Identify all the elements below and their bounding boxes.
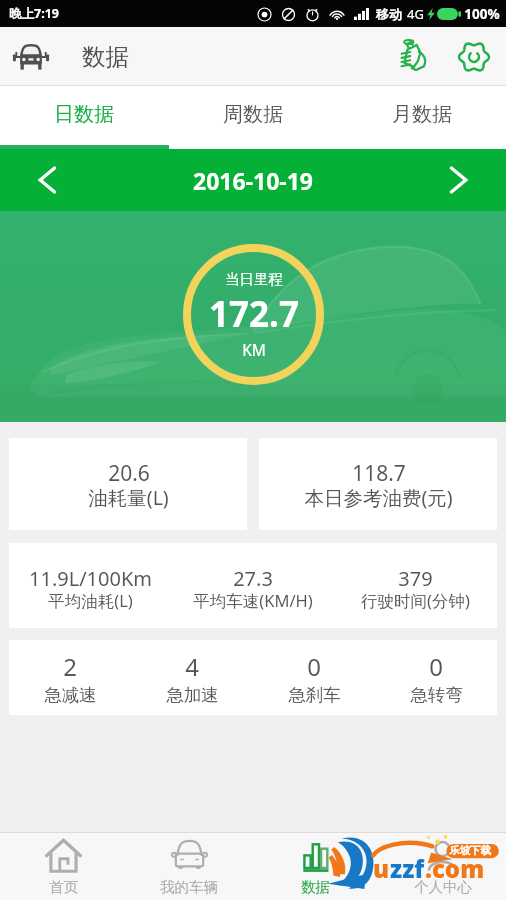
staticText: 当日里程 — [225, 270, 283, 288]
staticText: .com — [425, 852, 485, 885]
staticText: 行驶时间(分钟) — [361, 589, 470, 612]
staticText: 乐坡下载 — [449, 844, 491, 857]
staticText: 移动 — [376, 6, 402, 22]
button[interactable]: 个人中心 — [379, 833, 506, 900]
button[interactable]: 日数据 — [0, 86, 168, 149]
staticText: 急加速 — [166, 684, 219, 706]
button[interactable]: 周数据 — [168, 86, 337, 149]
staticText: 0 — [307, 650, 321, 683]
staticText: 个人中心 — [414, 878, 472, 896]
button[interactable]: 4 — [131, 650, 253, 705]
staticText: 2016-10-19 — [193, 165, 313, 196]
staticText: 4G — [407, 5, 424, 23]
button[interactable]: 数据 — [252, 833, 379, 900]
staticText: 4 — [185, 650, 199, 683]
staticText: 油耗量(L) — [88, 484, 169, 511]
staticText: 急转弯 — [410, 684, 463, 706]
button[interactable]: 首页 — [0, 833, 126, 900]
staticText: KM — [242, 339, 266, 360]
button[interactable]: My vehicle — [8, 34, 54, 80]
staticText: 首页 — [49, 878, 78, 896]
button[interactable]: Refuel — [392, 33, 440, 81]
staticText: 周数据 — [223, 102, 283, 127]
staticText: 118.7 — [352, 459, 406, 488]
button[interactable]: 月数据 — [337, 86, 506, 149]
staticText: 27.3 — [233, 565, 273, 592]
staticText: zzf — [390, 852, 425, 885]
button[interactable]: Settings — [450, 33, 498, 81]
staticText: 本日参考油费(元) — [304, 484, 453, 511]
button[interactable]: Previous day — [28, 160, 68, 200]
staticText: 379 — [398, 565, 433, 592]
staticText: 月数据 — [392, 102, 452, 127]
staticText: 平均车速(KM/H) — [193, 589, 313, 612]
button[interactable]: 2 — [9, 650, 131, 705]
button[interactable]: 27.3 — [171, 561, 334, 611]
staticText: 数据 — [82, 42, 129, 72]
staticText: 平均油耗(L) — [48, 589, 133, 612]
staticText: 20.6 — [108, 459, 150, 488]
button[interactable]: 11.9L/100Km — [9, 561, 171, 611]
staticText: 数据 — [301, 878, 330, 896]
button[interactable]: 我的车辆 — [126, 833, 252, 900]
button[interactable]: 379 — [334, 561, 497, 611]
staticText: 11.9L/100Km — [29, 565, 152, 592]
staticText: 0 — [429, 650, 443, 683]
button[interactable]: Next day — [438, 160, 478, 200]
staticText: 日数据 — [54, 102, 114, 127]
staticText: 晚上7:19 — [9, 5, 59, 22]
staticText: 100% — [464, 5, 500, 23]
button[interactable]: 118.7 — [259, 438, 497, 530]
staticText: 我的车辆 — [160, 878, 218, 896]
button[interactable]: 20.6 — [9, 438, 247, 530]
staticText: 急刹车 — [288, 684, 341, 706]
staticText: u — [373, 852, 390, 885]
button[interactable]: 0 — [375, 650, 497, 705]
staticText: 2 — [63, 650, 77, 683]
staticText: 急减速 — [44, 684, 97, 706]
staticText: 172.7 — [209, 290, 299, 338]
button[interactable]: 0 — [253, 650, 375, 705]
